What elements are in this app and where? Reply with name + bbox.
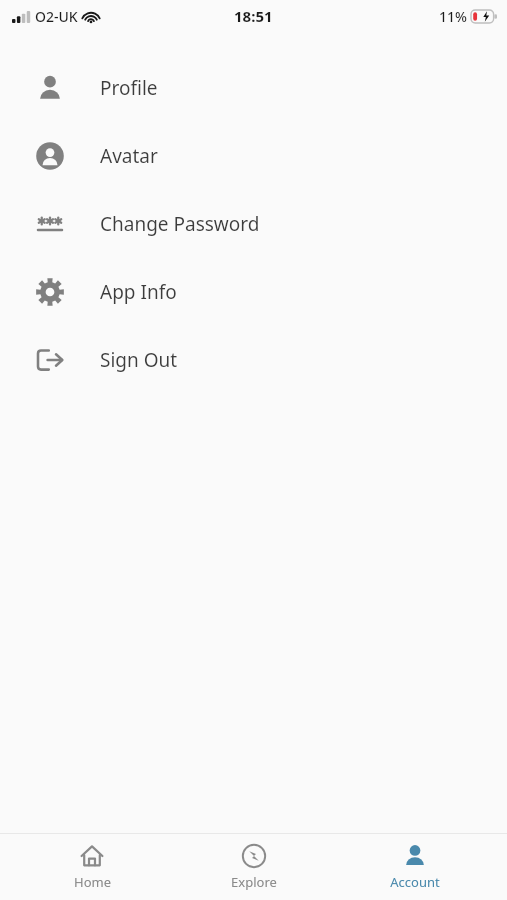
staticText: Avatar (100, 143, 158, 169)
staticText: Change Password (100, 211, 260, 237)
button[interactable]: Sign Out (0, 326, 507, 394)
staticText: Explore (231, 873, 277, 891)
staticText: O2-UK (35, 7, 78, 26)
staticText: Sign Out (100, 347, 178, 373)
staticText: Home (74, 873, 111, 891)
button[interactable]: Home (22, 834, 162, 900)
staticText: 18:51 (234, 6, 273, 26)
staticText: Account (390, 873, 440, 891)
button[interactable]: Avatar (0, 122, 507, 190)
staticText: App Info (100, 279, 177, 305)
button[interactable]: Account (345, 834, 485, 900)
button[interactable]: Profile (0, 54, 507, 122)
staticText: Profile (100, 75, 158, 101)
button[interactable]: Change Password (0, 190, 507, 258)
button[interactable]: App Info (0, 258, 507, 326)
staticText: 11% (439, 7, 467, 26)
button[interactable]: Explore (184, 834, 324, 900)
